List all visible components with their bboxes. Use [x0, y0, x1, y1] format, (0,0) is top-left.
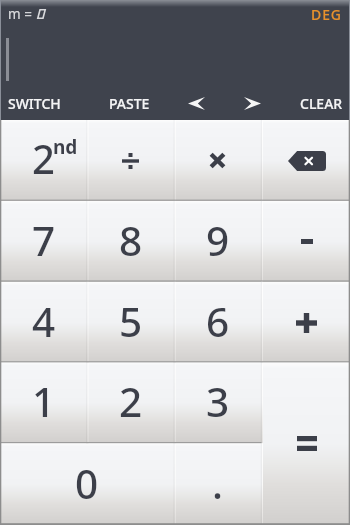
button[interactable]: 4 [0, 282, 87, 363]
button[interactable]: 3 [174, 362, 261, 443]
staticText: 9 [206, 213, 230, 268]
button[interactable]: Move cursor right [242, 89, 262, 117]
staticText: 0 [75, 456, 99, 511]
staticText: DEG [311, 5, 342, 24]
staticText: 7 [32, 213, 56, 268]
staticText: SWITCH [8, 94, 61, 113]
staticText: 1 [32, 374, 56, 429]
staticText: . [212, 456, 224, 511]
staticText: nd [53, 134, 78, 160]
staticText: 6 [206, 294, 230, 349]
button[interactable]: multiply [174, 120, 261, 201]
staticText: CLEAR [300, 94, 343, 113]
button[interactable]: 1 [0, 362, 87, 443]
button[interactable]: 9 [174, 201, 261, 282]
staticText: 4 [32, 294, 56, 349]
button[interactable]: 7 [0, 201, 87, 282]
staticText: m = [8, 5, 32, 23]
button[interactable]: 8 [87, 201, 174, 282]
button[interactable]: 6 [174, 282, 261, 363]
button[interactable]: Move cursor left [186, 89, 206, 117]
button[interactable]: 0 [0, 443, 174, 525]
staticText: PASTE [109, 94, 150, 113]
button[interactable]: second function [0, 120, 87, 201]
button[interactable]: PASTE [109, 89, 150, 117]
button[interactable]: backspace [262, 120, 350, 201]
staticText: 3 [206, 374, 230, 429]
button[interactable]: minus [262, 201, 350, 282]
button[interactable]: divide [87, 120, 174, 201]
button[interactable]: decimal point [174, 443, 261, 525]
button[interactable]: plus [262, 282, 350, 363]
staticText: 5 [119, 294, 143, 349]
staticText: 2 [119, 374, 143, 429]
staticText: 2 [32, 131, 55, 185]
staticText: 8 [119, 213, 143, 268]
button[interactable]: 5 [87, 282, 174, 363]
button[interactable]: SWITCH [8, 89, 61, 117]
button[interactable]: CLEAR [300, 89, 343, 117]
button[interactable]: 2 [87, 362, 174, 443]
button[interactable]: equals [262, 362, 350, 525]
